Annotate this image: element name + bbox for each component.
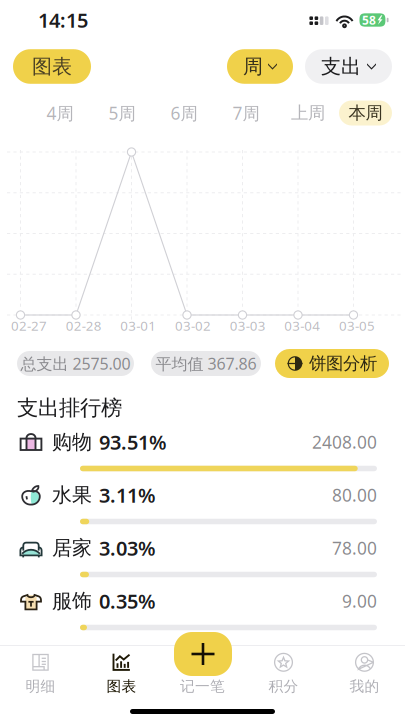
button[interactable]: 我的	[324, 646, 405, 701]
staticText: 0.35%	[99, 588, 156, 614]
staticText: 总支出 2575.00	[20, 353, 130, 374]
staticText: 水果	[52, 483, 92, 507]
staticText: 购物	[52, 430, 92, 454]
staticText: 80.00	[332, 483, 377, 506]
staticText: 03-01	[120, 317, 156, 334]
button[interactable]: 服饰	[0, 586, 405, 639]
button[interactable]: 4周	[29, 100, 91, 125]
button[interactable]: 饼图分析	[275, 349, 389, 378]
staticText: 居家	[52, 536, 92, 560]
staticText: 图表	[106, 677, 136, 695]
staticText: 记一笔	[180, 677, 225, 695]
staticText: 78.00	[332, 536, 377, 559]
staticText: 周	[243, 54, 263, 79]
staticText: 03-04	[284, 317, 320, 334]
staticText: 5周	[108, 101, 135, 124]
staticText: 我的	[349, 677, 379, 695]
staticText: 03-02	[175, 317, 211, 334]
staticText: 7周	[232, 101, 259, 124]
button[interactable]: 居家	[0, 533, 405, 586]
button[interactable]: 积分	[243, 646, 324, 701]
button[interactable]: 周	[227, 49, 293, 84]
button[interactable]: 记一笔	[174, 632, 232, 676]
staticText: 支出排行榜	[17, 395, 122, 421]
staticText: 服饰	[52, 589, 92, 613]
button[interactable]: 记一笔	[162, 646, 243, 701]
button[interactable]: 上周	[277, 100, 339, 125]
staticText: 图表	[32, 54, 72, 79]
button[interactable]: 本周	[339, 100, 392, 125]
staticText: 02-28	[66, 317, 102, 334]
staticText: 03-05	[339, 317, 375, 334]
staticText: 14:15	[38, 7, 88, 33]
button[interactable]: 图表	[81, 646, 162, 701]
staticText: 积分	[268, 677, 298, 695]
staticText: 明细	[25, 677, 55, 695]
button[interactable]: 图表	[13, 49, 91, 84]
button[interactable]: 支出	[305, 49, 392, 84]
staticText: 93.51%	[99, 429, 167, 455]
button[interactable]: 7周	[215, 100, 277, 125]
staticText: 2408.00	[312, 430, 377, 453]
staticText: 6周	[170, 101, 197, 124]
button[interactable]: 购物	[0, 427, 405, 480]
staticText: 9.00	[342, 589, 377, 612]
staticText: 支出	[321, 54, 361, 79]
staticText: 本周	[348, 102, 382, 124]
staticText: 02-27	[11, 317, 47, 334]
staticText: 3.11%	[99, 482, 156, 508]
staticText: 饼图分析	[309, 353, 377, 374]
staticText: 58	[362, 12, 376, 28]
button[interactable]: 明细	[0, 646, 81, 701]
button[interactable]: 6周	[153, 100, 215, 125]
staticText: 平均值 367.86	[155, 353, 256, 374]
staticText: 03-03	[230, 317, 266, 334]
staticText: 3.03%	[99, 535, 156, 561]
staticText: 4周	[46, 101, 73, 124]
button[interactable]: 水果	[0, 480, 405, 533]
staticText: 上周	[291, 102, 325, 124]
button[interactable]: 5周	[91, 100, 153, 125]
